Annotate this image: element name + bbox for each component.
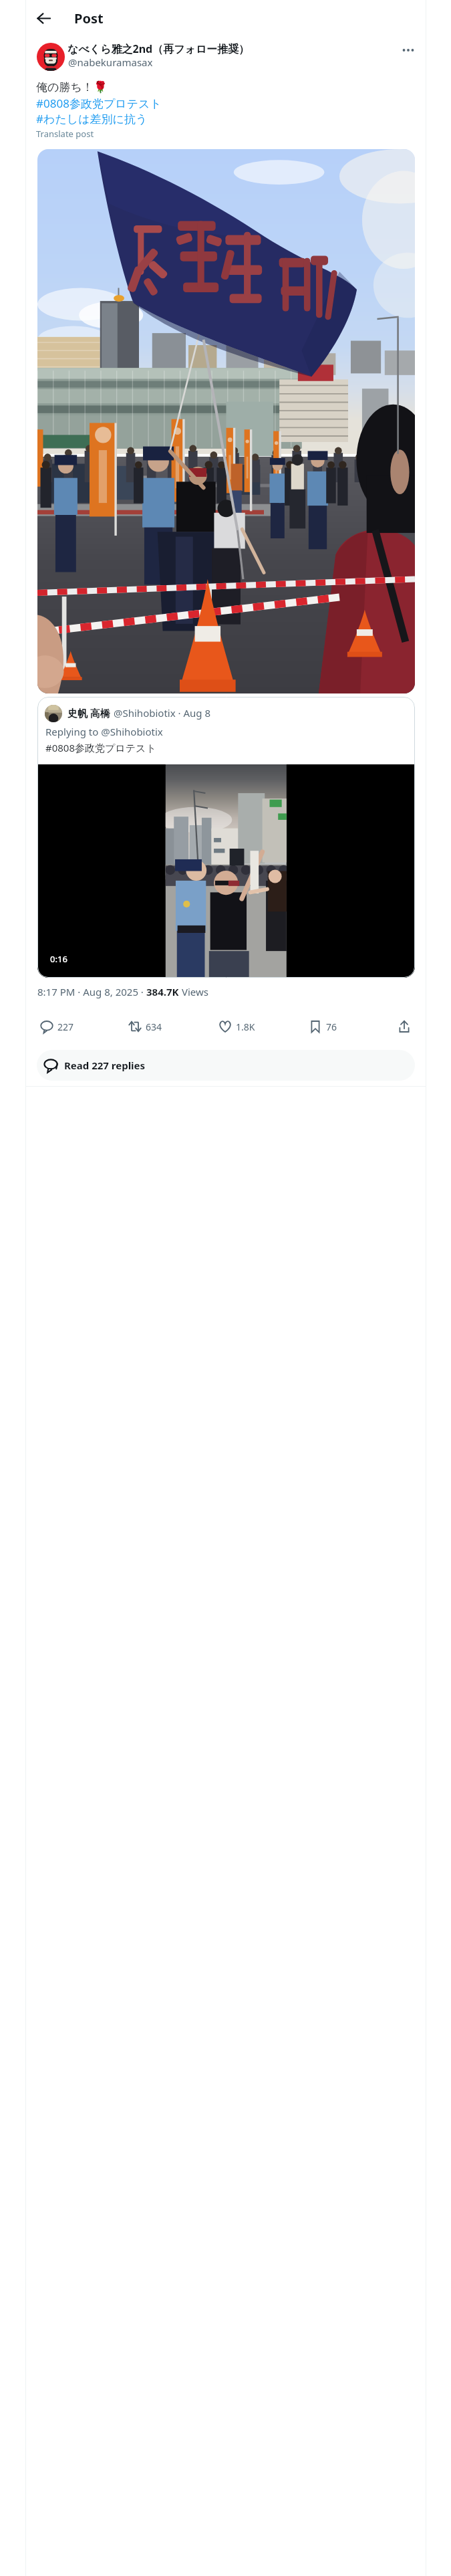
button[interactable]: Translate post — [36, 128, 94, 140]
staticText: 76 — [326, 1021, 337, 1033]
button[interactable]: 史帆 高橋 — [37, 697, 415, 978]
staticText: 227 — [57, 1021, 74, 1033]
button[interactable]: Back — [32, 7, 55, 29]
button[interactable]: Repost — [125, 1015, 166, 1038]
button[interactable]: Reply — [37, 1015, 78, 1038]
button[interactable]: Profile picture — [37, 43, 65, 71]
staticText: なべくら雅之2nd（再フォロー推奨） — [67, 41, 250, 56]
button[interactable]: Bookmark — [305, 1015, 341, 1038]
button[interactable]: Like — [215, 1015, 259, 1038]
staticText: Read 227 replies — [64, 1059, 146, 1072]
button[interactable]: Read 227 replies — [37, 1050, 415, 1081]
staticText: #0808参政党プロテスト — [45, 741, 156, 754]
staticText: Replying to @Shihobiotix — [45, 725, 163, 738]
staticText: @Shihobiotix · Aug 8 — [114, 706, 210, 720]
staticText: 384.7K — [146, 985, 179, 998]
staticText: #0808参政党プロテスト — [36, 96, 162, 111]
staticText: 俺の勝ち！🌹 — [36, 80, 108, 94]
staticText: 史帆 高橋 — [67, 706, 110, 720]
staticText: Translate post — [36, 128, 94, 140]
button[interactable]: Share — [393, 1015, 416, 1038]
button[interactable]: Post photo — [37, 149, 415, 693]
staticText: 8:17 PM · Aug 8, 2025 · — [37, 985, 146, 998]
staticText: #わたしは差別に抗う — [36, 111, 148, 126]
staticText: @nabekuramasax — [68, 56, 153, 69]
staticText: Views — [179, 985, 208, 998]
staticText: 634 — [146, 1021, 162, 1033]
staticText: 0:16 — [50, 953, 67, 965]
button[interactable]: More options — [397, 39, 420, 62]
staticText: Post — [74, 9, 104, 27]
staticText: 1.8K — [236, 1021, 255, 1033]
